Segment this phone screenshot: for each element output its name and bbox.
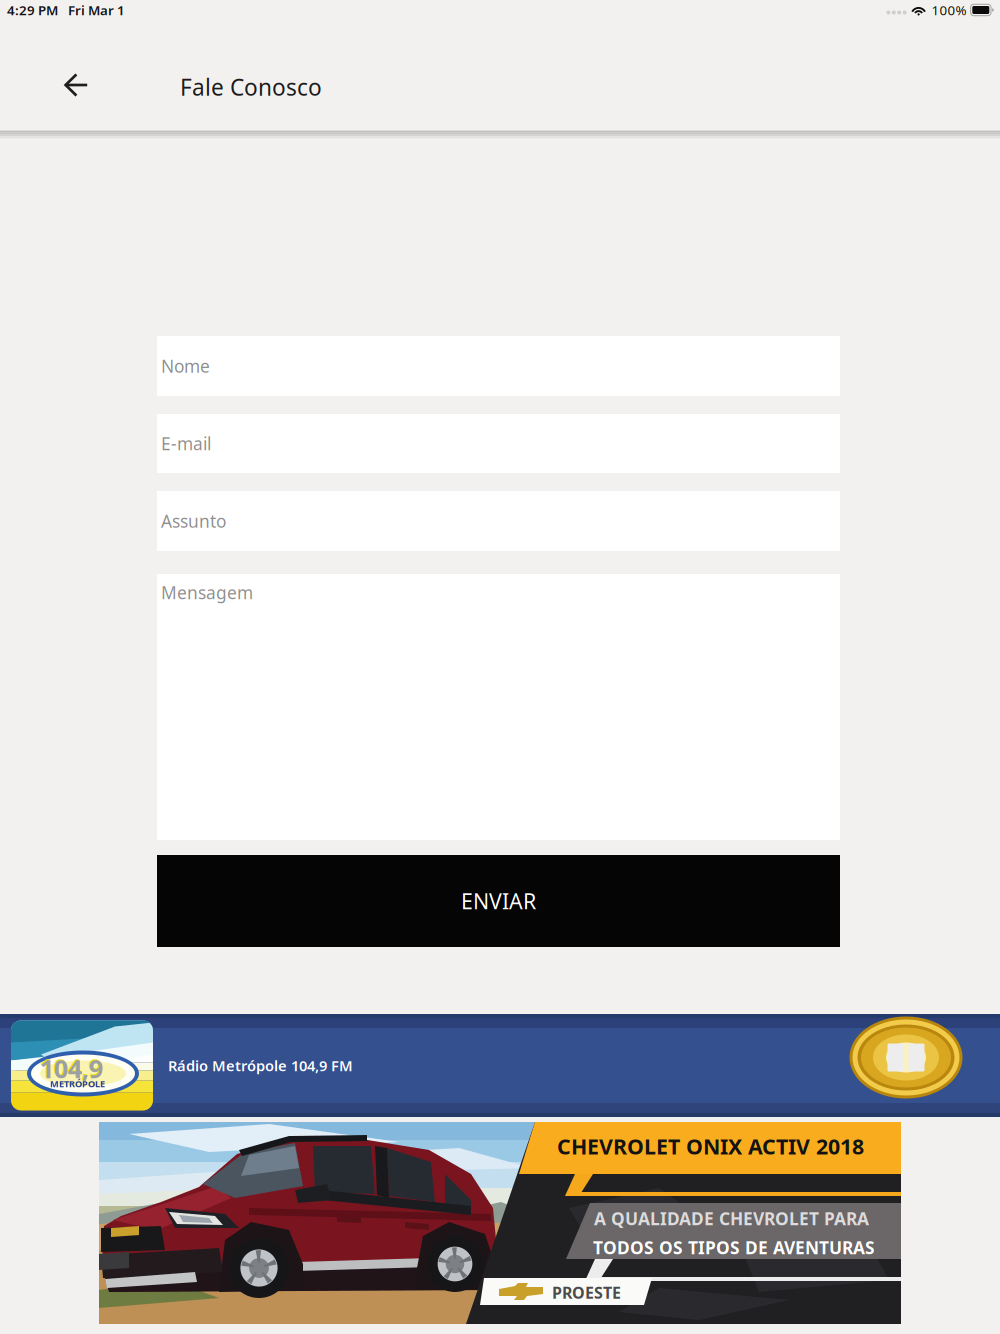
button[interactable]: Assunto	[157, 491, 840, 551]
staticText: Nome	[161, 354, 210, 377]
staticText: Assunto	[161, 509, 226, 532]
staticText: 104,9	[39, 1050, 102, 1084]
button[interactable]: Mensagem	[157, 574, 840, 840]
staticText: PROESTE	[552, 1282, 621, 1303]
button[interactable]: Pause radio stream	[847, 1013, 965, 1101]
button[interactable]: Back	[44, 51, 104, 123]
button[interactable]: ENVIAR	[157, 855, 840, 947]
button[interactable]: Nome	[157, 336, 840, 396]
button[interactable]: 104,9	[0, 1014, 1000, 1117]
staticText: ENVIAR	[461, 887, 536, 915]
button[interactable]: E-mail	[157, 414, 840, 473]
staticText: TODOS OS TIPOS DE AVENTURAS	[593, 1236, 875, 1259]
staticText: Fale Conosco	[180, 72, 322, 102]
staticText: 104,9	[40, 1051, 103, 1085]
staticText: A QUALIDADE CHEVROLET PARA	[594, 1207, 869, 1230]
staticText: Mensagem	[161, 581, 253, 604]
staticText: METRÓPOLE	[50, 1077, 105, 1090]
staticText: 4:29 PM	[7, 1, 58, 19]
staticText: E-mail	[161, 432, 211, 455]
button[interactable]: Chevrolet Onix Activ 2018 advertisement	[99, 1122, 901, 1324]
staticText: 100%	[932, 1, 967, 19]
staticText: Fri Mar 1	[68, 1, 125, 19]
staticText: Rádio Metrópole 104,9 FM	[168, 1056, 353, 1075]
staticText: CHEVROLET ONIX ACTIV 2018	[557, 1132, 864, 1160]
